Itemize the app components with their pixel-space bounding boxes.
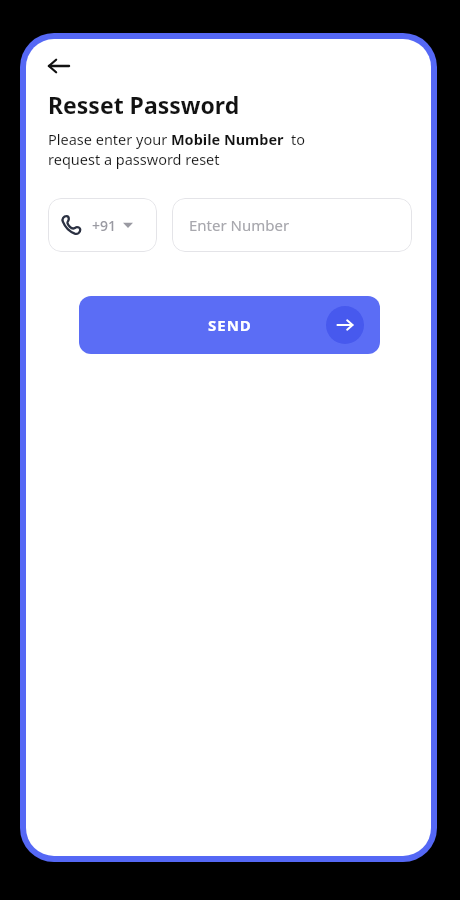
button[interactable]: Enter Number [172, 198, 412, 252]
staticText: Enter Number [189, 215, 290, 235]
staticText: +91 [92, 216, 117, 235]
staticText: Resset Password [48, 89, 240, 120]
staticText: SEND [208, 315, 252, 335]
button[interactable]: SEND [79, 296, 380, 354]
button[interactable]: Back [39, 46, 79, 86]
button[interactable]: Select country code [48, 198, 157, 252]
staticText: Please enter your Mobile Number to reque… [48, 129, 306, 170]
